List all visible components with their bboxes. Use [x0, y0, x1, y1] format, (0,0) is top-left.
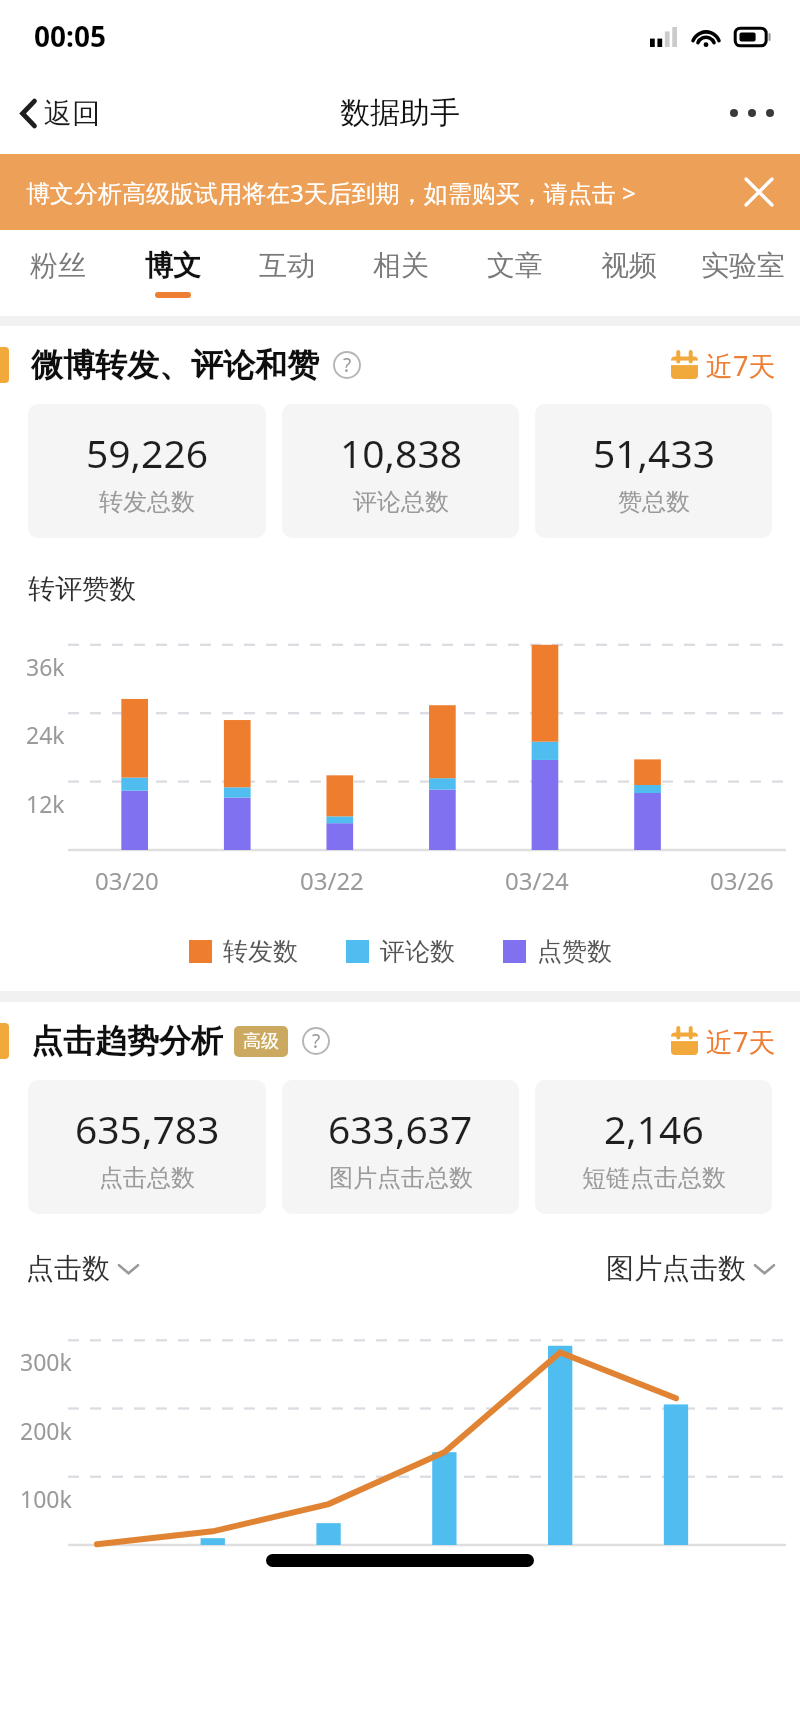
button[interactable]: 635,783 [28, 1080, 266, 1214]
staticText: 评论数 [380, 936, 455, 967]
staticText: 短链点击总数 [582, 1163, 726, 1193]
staticText: 博文分析高级版试用将在3天后到期，如需购买，请点击 > [26, 176, 636, 209]
button[interactable]: 近7天 [671, 1017, 800, 1066]
staticText: 高级 [243, 1030, 279, 1053]
staticText: 视频 [601, 248, 657, 283]
staticText: 实验室 [701, 248, 785, 283]
button[interactable]: 互动 [230, 230, 344, 316]
staticText: 文章 [487, 248, 543, 283]
button[interactable]: 59,226 [28, 404, 266, 538]
button[interactable]: More options [704, 91, 800, 135]
staticText: 点击数 [26, 1251, 110, 1286]
button[interactable]: Help [330, 348, 364, 382]
button[interactable]: 2,146 [535, 1080, 772, 1214]
staticText: 互动 [259, 248, 315, 283]
button[interactable]: 返回 [0, 86, 116, 141]
staticText: 返回 [44, 96, 100, 131]
staticText: 03/26 [710, 864, 774, 897]
staticText: 300k [20, 1346, 72, 1377]
staticText: 博文 [145, 248, 201, 283]
staticText: 相关 [373, 248, 429, 283]
staticText: 点赞数 [537, 936, 612, 967]
staticText: 12k [26, 788, 65, 819]
button[interactable]: 博文 [115, 230, 230, 316]
button[interactable]: 博文分析高级版试用将在3天后到期，如需购买，请点击 > [0, 154, 800, 230]
staticText: 转发总数 [99, 487, 195, 517]
button[interactable]: 图片点击数 [606, 1246, 774, 1291]
button[interactable]: 实验室 [686, 230, 800, 316]
staticText: 点击总数 [99, 1163, 195, 1193]
staticText: 24k [26, 719, 65, 750]
staticText: 评论总数 [353, 487, 449, 517]
staticText: 粉丝 [30, 248, 86, 283]
staticText: 59,226 [86, 426, 208, 479]
staticText: 633,637 [328, 1102, 473, 1155]
button[interactable]: 近7天 [671, 341, 800, 390]
staticText: 点击趋势分析 [31, 1021, 223, 1061]
button[interactable]: 51,433 [535, 404, 772, 538]
staticText: 近7天 [706, 1023, 776, 1060]
staticText: 微博转发、评论和赞 [31, 345, 319, 385]
staticText: 200k [20, 1415, 72, 1446]
staticText: 635,783 [75, 1102, 220, 1155]
staticText: 10,838 [340, 426, 462, 479]
staticText: 赞总数 [618, 487, 690, 517]
staticText: ? [312, 1028, 321, 1054]
button[interactable]: 视频 [572, 230, 686, 316]
staticText: 2,146 [604, 1102, 704, 1155]
staticText: 00:05 [34, 17, 106, 55]
staticText: 转发数 [223, 936, 298, 967]
staticText: 图片点击数 [606, 1251, 746, 1286]
staticText: 转评赞数 [28, 572, 136, 606]
staticText: 51,433 [593, 426, 715, 479]
button[interactable]: 粉丝 [0, 230, 115, 316]
staticText: 图片点击总数 [329, 1163, 473, 1193]
staticText: 近7天 [706, 347, 776, 384]
button[interactable]: Help [299, 1024, 333, 1058]
staticText: 100k [20, 1483, 72, 1514]
button[interactable]: Close banner [718, 161, 800, 223]
staticText: 03/20 [95, 864, 159, 897]
button[interactable]: 633,637 [282, 1080, 519, 1214]
staticText: ? [343, 352, 352, 378]
staticText: 03/24 [505, 864, 569, 897]
button[interactable]: 点击数 [26, 1246, 138, 1291]
button[interactable]: 文章 [458, 230, 572, 316]
button[interactable]: 10,838 [282, 404, 519, 538]
staticText: 数据助手 [340, 94, 460, 132]
staticText: 03/22 [300, 864, 364, 897]
staticText: 36k [26, 651, 65, 682]
button[interactable]: 相关 [344, 230, 458, 316]
